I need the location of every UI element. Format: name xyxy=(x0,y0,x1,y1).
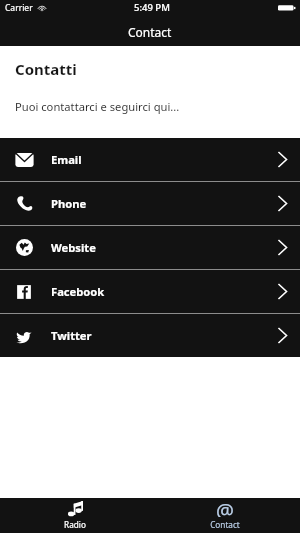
staticText: Contatti xyxy=(15,59,77,79)
button[interactable]: Email xyxy=(0,138,300,181)
staticText: Email xyxy=(51,152,82,167)
staticText: 5:49 PM xyxy=(134,1,170,14)
button[interactable]: Twitter xyxy=(0,314,300,357)
staticText: @ xyxy=(216,497,234,517)
button[interactable]: Phone xyxy=(0,182,300,225)
staticText: Puoi contattarci e seguirci qui... xyxy=(15,99,180,114)
button[interactable]: Website xyxy=(0,226,300,269)
staticText: Website xyxy=(51,240,96,255)
button[interactable]: Contact xyxy=(150,498,300,533)
button[interactable]: Radio xyxy=(0,498,150,533)
staticText: Phone xyxy=(51,196,87,211)
staticText: Contact xyxy=(128,24,172,40)
staticText: Twitter xyxy=(51,328,92,343)
staticText: Carrier xyxy=(5,2,33,14)
staticText: Facebook xyxy=(51,284,105,299)
button[interactable]: Facebook xyxy=(0,270,300,313)
staticText: Contact xyxy=(210,519,240,530)
staticText: Radio xyxy=(64,519,86,530)
